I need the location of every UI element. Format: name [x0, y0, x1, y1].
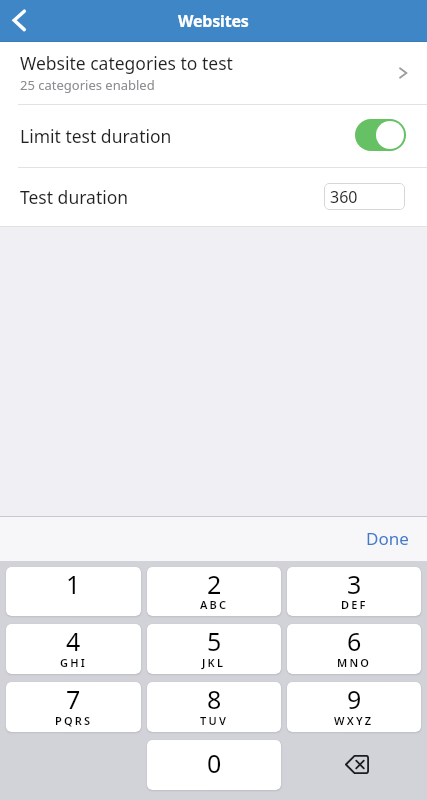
staticText: TUV [200, 713, 229, 728]
button[interactable]: Limit test duration [0, 105, 427, 167]
button[interactable]: 3 [287, 567, 421, 616]
button[interactable]: 9 [287, 682, 421, 732]
staticText: 3 [347, 567, 362, 601]
button[interactable]: 360 [324, 183, 405, 210]
staticText: 7 [66, 682, 81, 716]
button[interactable]: 1 [6, 567, 141, 616]
staticText: 5 [207, 624, 222, 658]
staticText: Limit test duration [20, 124, 355, 148]
staticText: 25 categories enabled [20, 76, 155, 94]
button[interactable]: 6 [287, 624, 421, 674]
button[interactable]: 8 [147, 682, 281, 732]
staticText: 6 [347, 624, 362, 658]
button[interactable]: 5 [147, 624, 281, 674]
staticText: WXYZ [334, 713, 374, 728]
staticText: 0 [207, 746, 222, 780]
button[interactable]: 2 [147, 567, 281, 616]
staticText: PQRS [55, 713, 93, 728]
staticText: 360 [330, 186, 358, 208]
button[interactable]: Backspace [287, 740, 421, 790]
button[interactable]: Website categories to test [0, 42, 427, 104]
button[interactable]: Done [346, 517, 427, 561]
staticText: 4 [66, 624, 81, 658]
staticText: 8 [207, 682, 222, 716]
button[interactable]: 4 [6, 624, 141, 674]
staticText: Websites [178, 10, 249, 32]
staticText: MNO [337, 655, 372, 670]
staticText: Website categories to test [20, 51, 233, 75]
staticText: ABC [200, 597, 229, 612]
staticText: Test duration [20, 185, 324, 209]
staticText: Done [366, 527, 409, 550]
button[interactable]: Back [0, 0, 44, 42]
button[interactable]: 7 [6, 682, 141, 732]
staticText: GHI [60, 655, 87, 670]
staticText: 9 [347, 682, 362, 716]
staticText: 1 [66, 567, 81, 601]
staticText: DEF [341, 597, 368, 612]
button[interactable]: 0 [147, 740, 281, 790]
staticText: 2 [207, 567, 222, 601]
staticText: JKL [202, 655, 226, 670]
